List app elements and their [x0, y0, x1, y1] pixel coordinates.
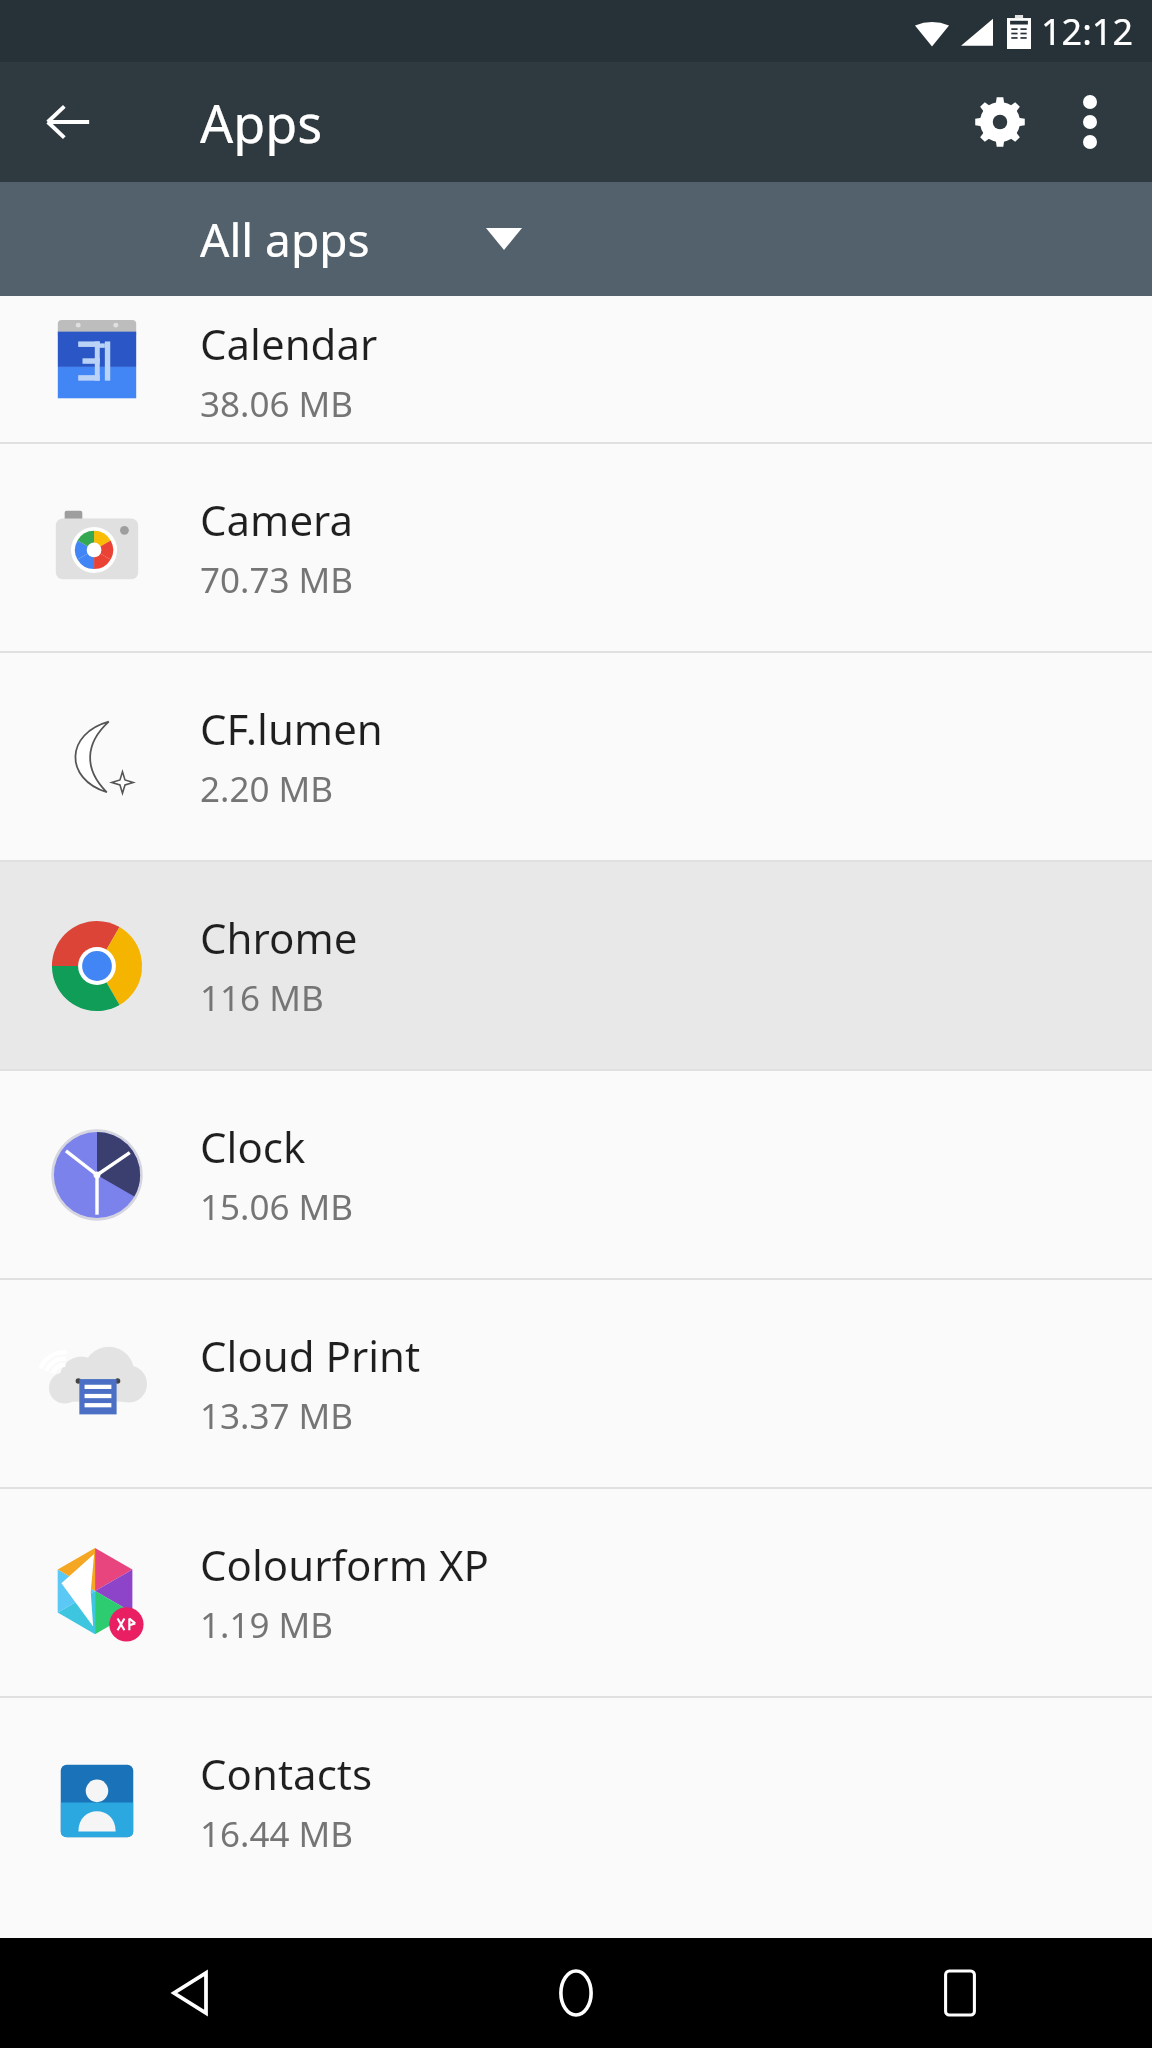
staticText: 12:12 — [1041, 7, 1134, 56]
button[interactable]: Chrome — [0, 862, 1152, 1069]
button[interactable]: More options — [1046, 78, 1134, 166]
staticText: Chrome — [200, 909, 358, 966]
staticText: Contacts — [200, 1745, 373, 1802]
button[interactable]: Home — [384, 1938, 768, 2048]
staticText: Cloud Print — [200, 1327, 421, 1384]
staticText: Clock — [200, 1118, 306, 1175]
button[interactable]: CF.lumen — [0, 653, 1152, 860]
staticText: 38.06 MB — [200, 380, 354, 428]
staticText: Apps — [200, 87, 323, 158]
staticText: Colourform XP — [200, 1536, 489, 1593]
staticText: 116 MB — [200, 974, 324, 1022]
staticText: 70.73 MB — [200, 556, 354, 604]
button[interactable]: Cloud Print — [0, 1280, 1152, 1487]
staticText: 13.37 MB — [200, 1392, 354, 1440]
button[interactable]: Contacts — [0, 1698, 1152, 1905]
staticText: CF.lumen — [200, 700, 383, 757]
staticText: 15.06 MB — [200, 1183, 354, 1231]
staticText: 2.20 MB — [200, 765, 334, 813]
button[interactable]: Recent apps — [768, 1938, 1152, 2048]
staticText: Camera — [200, 491, 354, 548]
button[interactable]: Colourform XP — [0, 1489, 1152, 1696]
button[interactable]: Back — [26, 80, 110, 164]
staticText: All apps — [200, 208, 370, 271]
button[interactable]: Back — [0, 1938, 384, 2048]
button[interactable]: All apps — [0, 182, 1152, 296]
button[interactable]: Calendar — [0, 296, 1152, 442]
staticText: 16.44 MB — [200, 1810, 354, 1858]
staticText: Calendar — [200, 315, 378, 372]
staticText: 1.19 MB — [200, 1601, 334, 1649]
button[interactable]: Clock — [0, 1071, 1152, 1278]
button[interactable]: Camera — [0, 444, 1152, 651]
button[interactable]: Settings — [954, 76, 1046, 168]
